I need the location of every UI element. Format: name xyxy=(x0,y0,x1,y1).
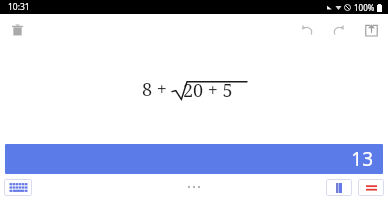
button[interactable]: 13 xyxy=(5,144,383,174)
button[interactable]: Function keypad xyxy=(358,179,384,196)
button[interactable]: Redo xyxy=(326,17,352,43)
button[interactable]: Undo xyxy=(294,17,320,43)
button[interactable]: More options xyxy=(179,177,209,197)
staticText: 8 + xyxy=(142,77,172,102)
button[interactable]: Share xyxy=(358,17,384,43)
staticText: 100% xyxy=(354,2,375,13)
staticText: 10:31 xyxy=(8,1,30,13)
button[interactable]: Show keyboard xyxy=(4,179,32,196)
button[interactable]: Numeric keypad xyxy=(326,179,352,196)
staticText: 13 xyxy=(351,146,373,172)
staticText: 20 + 5 xyxy=(183,78,233,103)
button[interactable]: Clear xyxy=(4,17,30,43)
